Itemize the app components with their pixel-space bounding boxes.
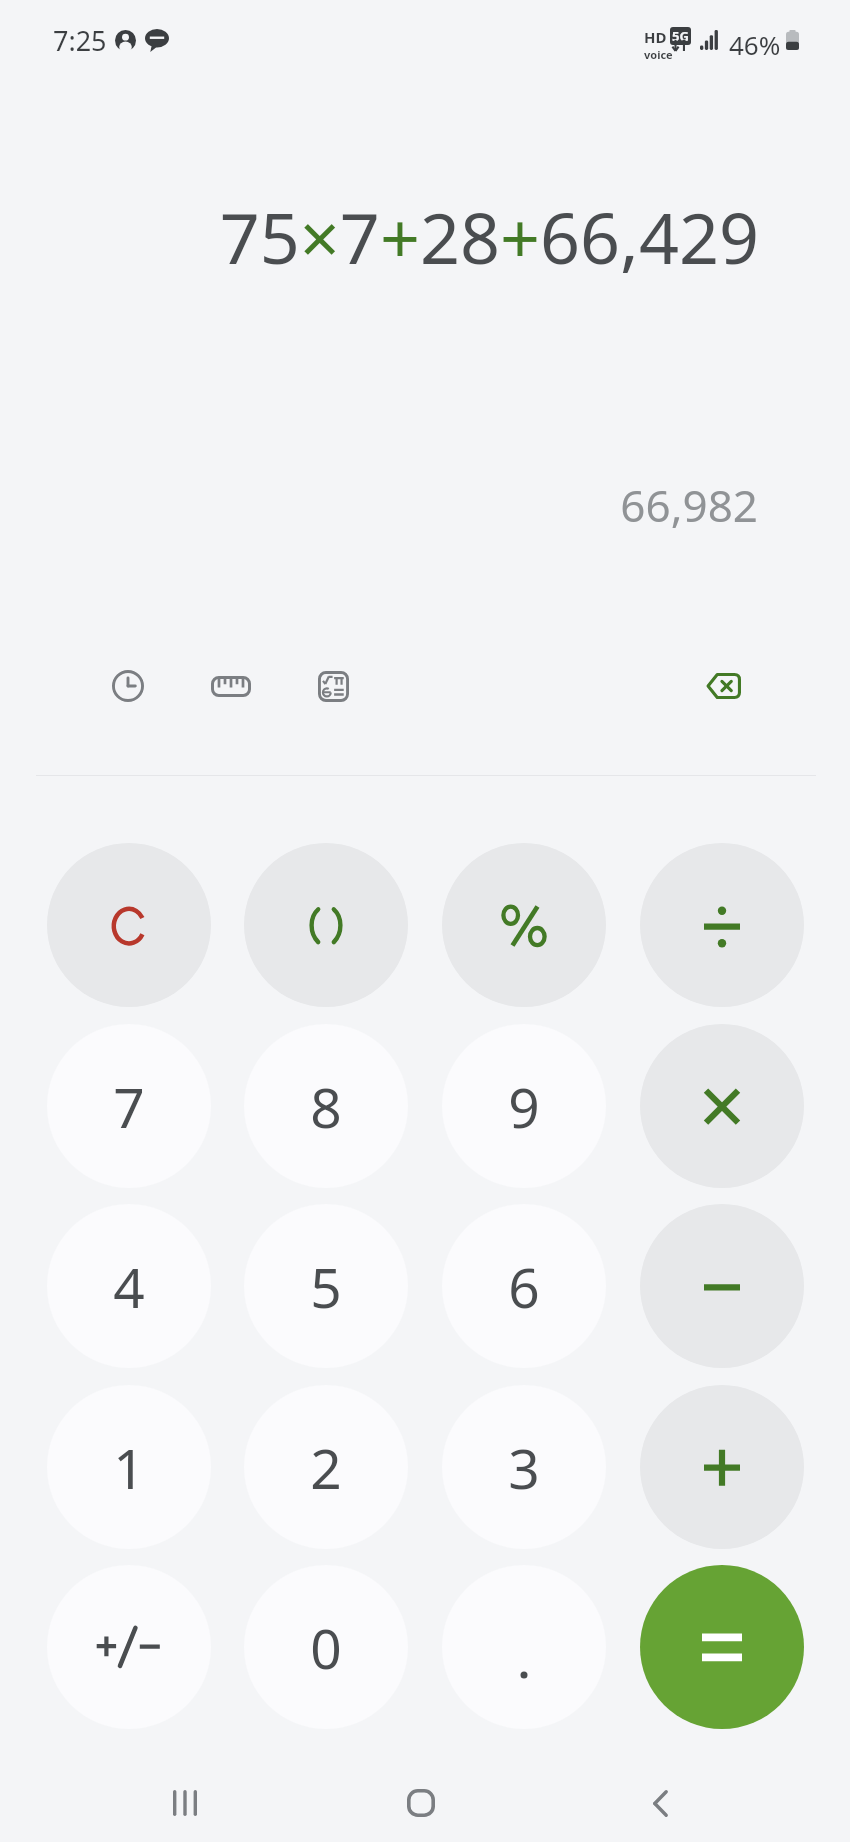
button[interactable]: Home (379, 1761, 463, 1842)
staticText: 6 (508, 1249, 540, 1324)
button[interactable]: Clear (47, 843, 211, 1007)
staticText: 7:25 (53, 22, 107, 59)
button[interactable]: Unit converter (193, 648, 269, 724)
button[interactable]: 2 (244, 1385, 408, 1549)
button[interactable]: Minus (640, 1204, 804, 1368)
button[interactable]: 7 (47, 1024, 211, 1188)
staticText: 7 (113, 1069, 145, 1144)
button[interactable]: 3 (442, 1385, 606, 1549)
staticText: 2 (310, 1430, 342, 1505)
staticText: 8 (310, 1069, 342, 1144)
button[interactable]: 9 (442, 1024, 606, 1188)
staticText: 75×7+28+66,429 (219, 189, 759, 284)
staticText: 1 (113, 1430, 145, 1505)
staticText: HD (644, 27, 667, 47)
button[interactable]: Parentheses (244, 843, 408, 1007)
staticText: 66,982 (620, 475, 758, 535)
button[interactable]: Back (618, 1761, 702, 1842)
button[interactable]: 0 (244, 1565, 408, 1729)
button[interactable]: Plus (640, 1385, 804, 1549)
button[interactable]: Recents (143, 1761, 227, 1842)
staticText: 9 (508, 1069, 540, 1144)
staticText: 3 (508, 1430, 540, 1505)
button[interactable]: Plus minus (47, 1565, 211, 1729)
button[interactable]: 4 (47, 1204, 211, 1368)
button[interactable]: 1 (47, 1385, 211, 1549)
staticText: 5G (672, 27, 689, 45)
button[interactable]: History (90, 648, 166, 724)
button[interactable]: Backspace (685, 648, 761, 724)
staticText: 5 (310, 1249, 342, 1324)
button[interactable]: 8 (244, 1024, 408, 1188)
button[interactable]: Decimal point (442, 1565, 606, 1729)
button[interactable]: Scientific calculator (295, 648, 371, 724)
button[interactable]: 5 (244, 1204, 408, 1368)
staticText: 46% (729, 27, 781, 62)
button[interactable]: Divide (640, 843, 804, 1007)
staticText: voice (644, 47, 673, 62)
staticText: 4 (113, 1249, 145, 1324)
button[interactable]: Percent (442, 843, 606, 1007)
button[interactable]: Multiply (640, 1024, 804, 1188)
button[interactable]: Equals (640, 1565, 804, 1729)
button[interactable]: 6 (442, 1204, 606, 1368)
staticText: 0 (310, 1610, 342, 1685)
